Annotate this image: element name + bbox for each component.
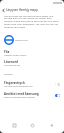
button[interactable]: Fila xyxy=(0,48,64,58)
button[interactable]: Back xyxy=(0,6,6,14)
button[interactable]: Fingeravtryck xyxy=(0,79,64,89)
staticText: Ansiktet med Samsung xyxy=(4,92,39,96)
button[interactable]: Toggle xyxy=(55,94,60,97)
button[interactable]: Home xyxy=(27,120,37,130)
staticText: Lås upp med fingeravtryck xyxy=(4,85,33,88)
button[interactable]: Lösenord xyxy=(0,58,64,68)
staticText: Lärpysen Hembjy mapp xyxy=(6,8,38,12)
staticText: Fila xyxy=(4,50,10,54)
button[interactable]: Recents xyxy=(9,120,19,130)
staticText: lagring kvar xyxy=(15,39,28,42)
staticText: Beveilig xyxy=(4,73,13,76)
staticText: Vät är försät för din denna lätta appar … xyxy=(4,14,60,29)
staticText: Fingeravtryck xyxy=(4,81,25,85)
button[interactable]: Toggle xyxy=(55,83,60,86)
staticText: Hej sätteka blir xyxy=(4,64,21,67)
button[interactable]: Back xyxy=(46,120,56,130)
staticText: Lösenord xyxy=(4,60,18,64)
staticText: genom inloggningen uppgift xyxy=(4,96,36,99)
button[interactable]: Ansiktet med Samsung xyxy=(0,90,64,100)
staticText: Hembjy sträck villkor xyxy=(4,54,27,57)
